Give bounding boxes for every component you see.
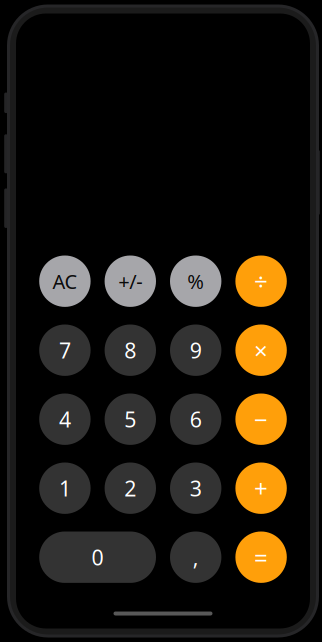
staticText: 6 — [190, 405, 202, 433]
button[interactable]: + — [235, 462, 287, 514]
staticText: − — [254, 403, 268, 435]
staticText: AC — [52, 268, 77, 294]
button[interactable]: × — [235, 324, 287, 376]
button[interactable]: 4 — [39, 393, 91, 445]
staticText: 5 — [124, 405, 136, 433]
button[interactable]: 6 — [170, 393, 221, 445]
staticText: +/- — [118, 268, 142, 294]
button[interactable]: 9 — [170, 324, 221, 376]
staticText: 1 — [59, 474, 71, 502]
staticText: , — [193, 543, 199, 571]
staticText: = — [254, 541, 268, 573]
button[interactable]: +/- — [105, 255, 156, 307]
staticText: 7 — [59, 336, 71, 364]
staticText: 0 — [92, 543, 104, 571]
staticText: 9 — [190, 336, 202, 364]
staticText: 8 — [124, 336, 136, 364]
staticText: 2 — [124, 474, 136, 502]
button[interactable]: 1 — [39, 462, 91, 514]
button[interactable]: − — [235, 393, 287, 445]
button[interactable]: 3 — [170, 462, 221, 514]
button[interactable]: , — [170, 531, 221, 583]
staticText: ÷ — [254, 265, 268, 297]
staticText: + — [254, 472, 268, 504]
staticText: 3 — [190, 474, 202, 502]
button[interactable]: AC — [39, 255, 91, 307]
button[interactable]: ÷ — [235, 255, 287, 307]
button[interactable]: 2 — [105, 462, 156, 514]
staticText: × — [254, 334, 268, 366]
button[interactable]: 8 — [105, 324, 156, 376]
staticText: 4 — [59, 405, 71, 433]
button[interactable]: 5 — [105, 393, 156, 445]
button[interactable]: % — [170, 255, 221, 307]
button[interactable]: 0 — [39, 531, 156, 583]
button[interactable]: = — [235, 531, 287, 583]
staticText: % — [187, 268, 204, 294]
button[interactable]: 7 — [39, 324, 91, 376]
